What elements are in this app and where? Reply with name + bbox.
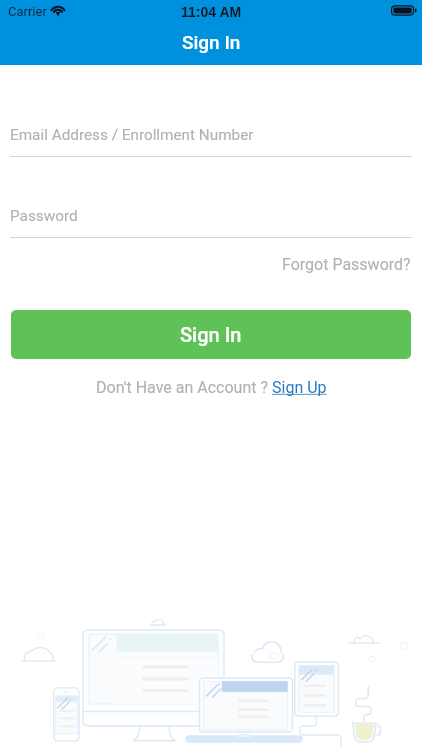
staticText: Don't Have an Account ? (96, 378, 272, 397)
staticText: Carrier (8, 4, 47, 19)
button[interactable]: Email Address / Enrollment Number (10, 126, 412, 157)
staticText: Password (10, 207, 78, 225)
button[interactable]: Sign In (11, 310, 411, 359)
button[interactable]: Password (10, 207, 412, 238)
staticText: Sign In (182, 31, 241, 53)
staticText: 11:04 AM (181, 4, 242, 20)
staticText: Sign In (180, 323, 242, 346)
button[interactable]: Forgot Password? (271, 252, 422, 277)
button[interactable]: Sign Up (272, 378, 327, 397)
staticText: Email Address / Enrollment Number (10, 126, 254, 144)
